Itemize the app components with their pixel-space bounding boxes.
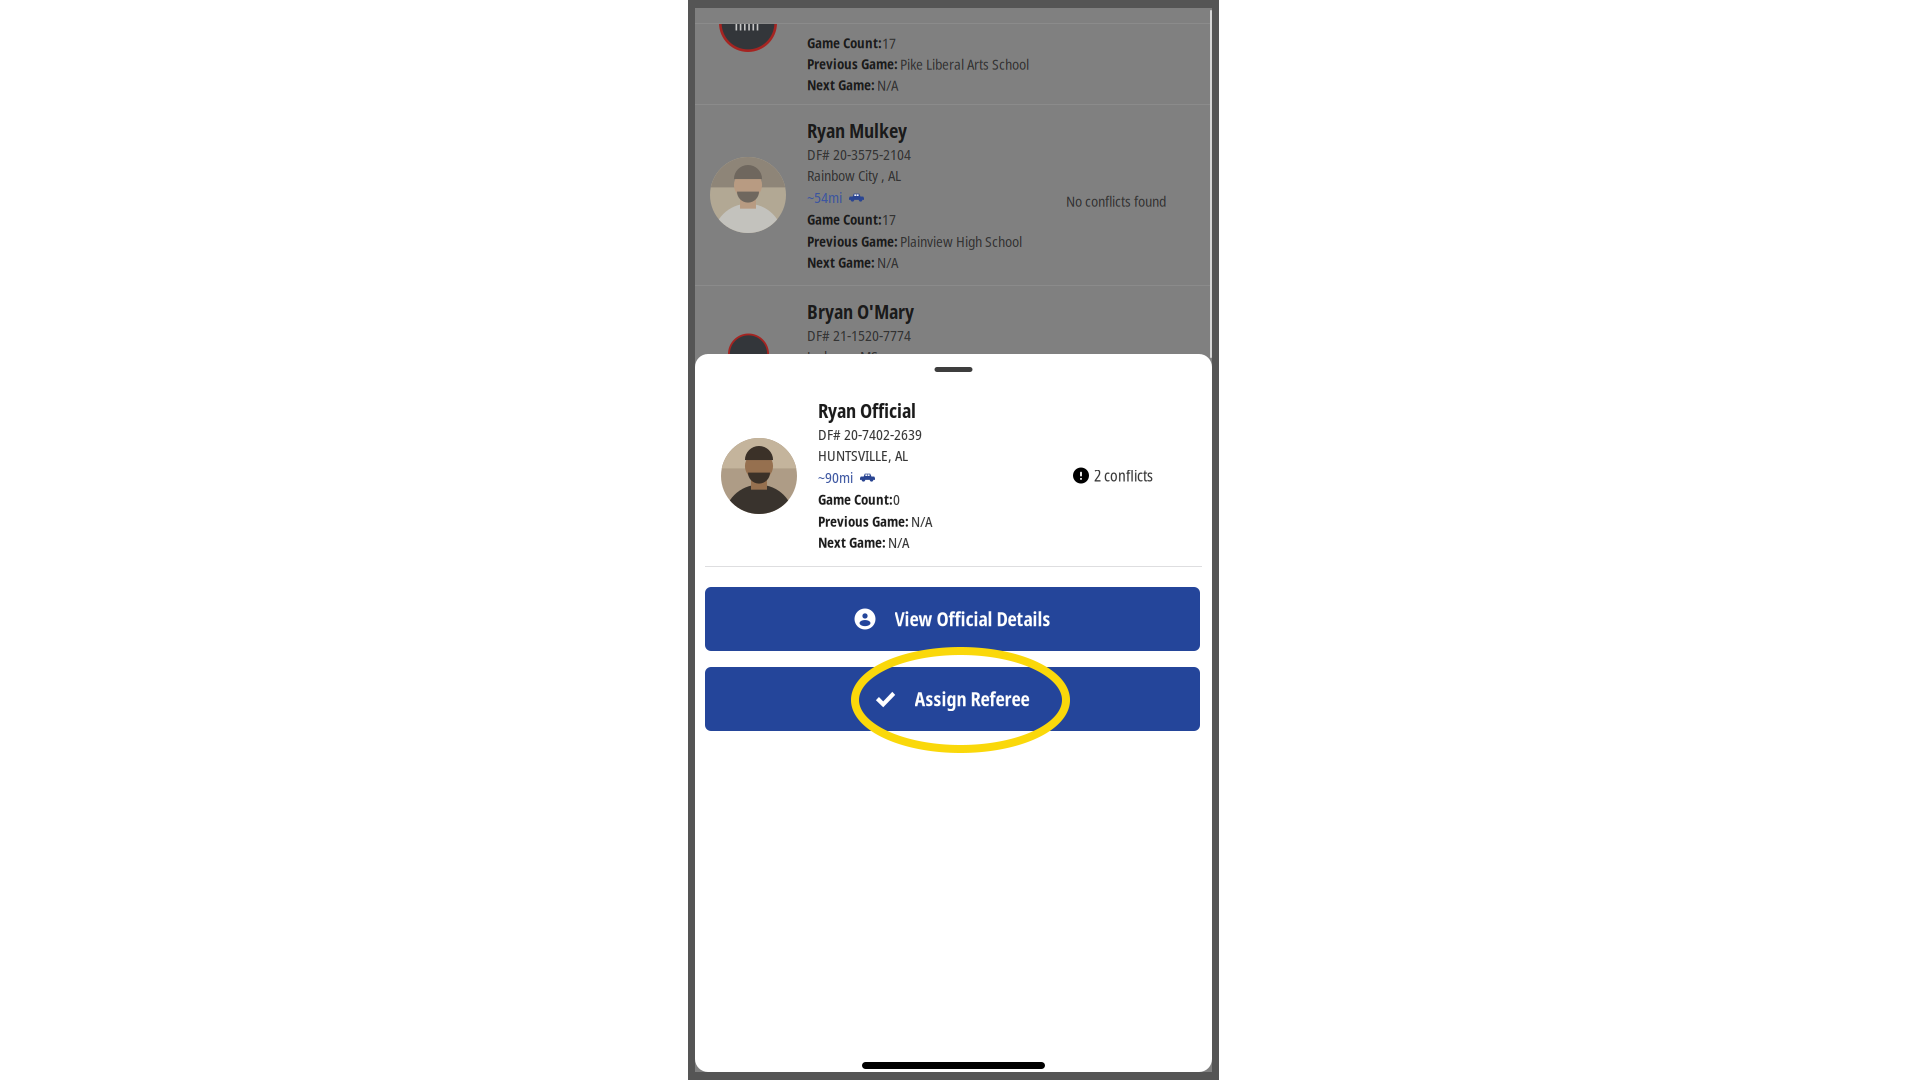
staticText: Next Game: <box>807 75 875 94</box>
staticText: Assign Referee <box>914 686 1029 712</box>
staticText: Ryan Official <box>818 398 916 423</box>
button[interactable]: Assign Referee <box>705 667 1200 731</box>
staticText: Game Count: <box>807 391 882 410</box>
staticText: 0 <box>893 489 900 509</box>
staticText: N/A <box>888 532 909 552</box>
staticText: Pike Liberal Arts School <box>900 54 1029 74</box>
staticText: No conflicts found <box>1066 191 1166 211</box>
staticText: Jackson , MS <box>807 346 878 366</box>
staticText: ~90mi <box>818 467 853 487</box>
staticText: N/A <box>877 75 898 95</box>
staticText: DF# 21-1520-7774 <box>807 325 911 345</box>
staticText: Plainview High School <box>900 231 1022 251</box>
staticText: Rainbow City , AL <box>807 165 901 185</box>
staticText: N/A <box>911 511 932 531</box>
staticText: View Official Details <box>894 606 1050 632</box>
staticText: N/A <box>877 252 898 272</box>
staticText: Game Count: <box>807 210 882 229</box>
staticText: DF# 20-7402-2639 <box>818 424 922 444</box>
staticText: 17 <box>882 33 896 53</box>
staticText: 2 conflicts <box>1094 465 1153 486</box>
staticText: Previous Game: <box>807 54 898 73</box>
staticText: N/A <box>877 433 898 453</box>
staticText: 4 <box>882 390 889 410</box>
staticText: Previous Game: <box>807 232 898 251</box>
staticText: Next Game: <box>807 253 875 272</box>
staticText: Ryan Mulkey <box>807 118 907 143</box>
staticText: HUNTSVILLE, AL <box>818 445 908 465</box>
staticText: Previous Game: <box>807 413 898 432</box>
staticText: Previous Game: <box>818 512 909 531</box>
button[interactable]: View Official Details <box>705 587 1200 651</box>
staticText: ~54mi <box>807 187 842 207</box>
staticText: Next Game: <box>818 533 886 552</box>
staticText: Game Count: <box>818 490 893 509</box>
staticText: 17 <box>882 209 896 229</box>
staticText: Game Count: <box>807 33 882 52</box>
staticText: Bryan O'Mary <box>807 299 914 324</box>
staticText: Next Game: <box>807 434 875 453</box>
staticText: DF# 20-3575-2104 <box>807 144 911 164</box>
staticText: N/A <box>900 412 921 432</box>
